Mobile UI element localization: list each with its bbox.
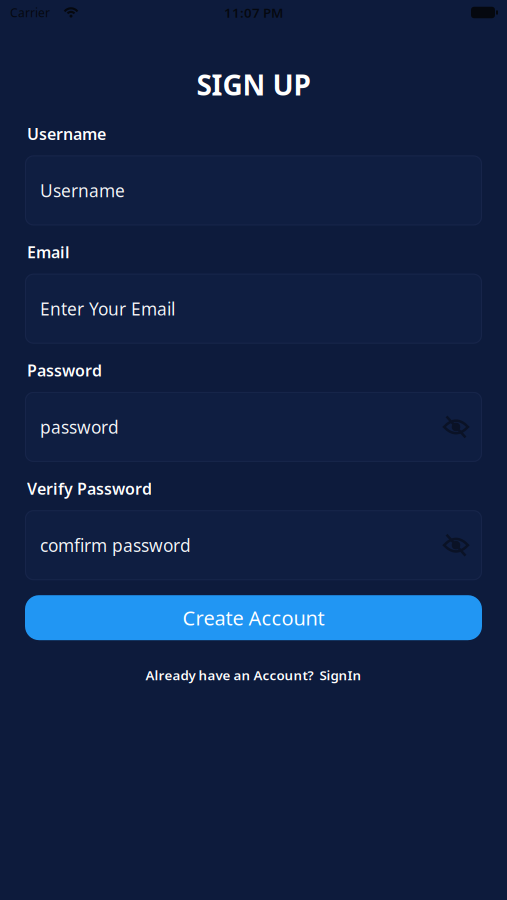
- staticText: Username: [40, 179, 125, 202]
- staticText: Verify Password: [27, 478, 152, 499]
- button[interactable]: Already have an Account? SignIn: [25, 666, 482, 684]
- staticText: Create Account: [182, 604, 324, 631]
- staticText: password: [40, 415, 119, 438]
- staticText: Enter Your Email: [40, 297, 175, 320]
- staticText: Password: [27, 360, 102, 381]
- button[interactable]: Create Account: [25, 595, 482, 640]
- staticText: Username: [27, 123, 106, 144]
- button[interactable]: comfirm password: [25, 510, 482, 580]
- staticText: Already have an Account? SignIn: [145, 666, 361, 684]
- button[interactable]: Enter Your Email: [25, 274, 482, 344]
- staticText: comfirm password: [40, 534, 191, 557]
- button[interactable]: password: [25, 392, 482, 462]
- staticText: Carrier: [10, 4, 50, 20]
- button[interactable]: Username: [25, 155, 482, 225]
- staticText: 11:07 PM: [224, 4, 283, 21]
- staticText: SIGN UP: [196, 66, 310, 103]
- staticText: Email: [27, 241, 70, 263]
